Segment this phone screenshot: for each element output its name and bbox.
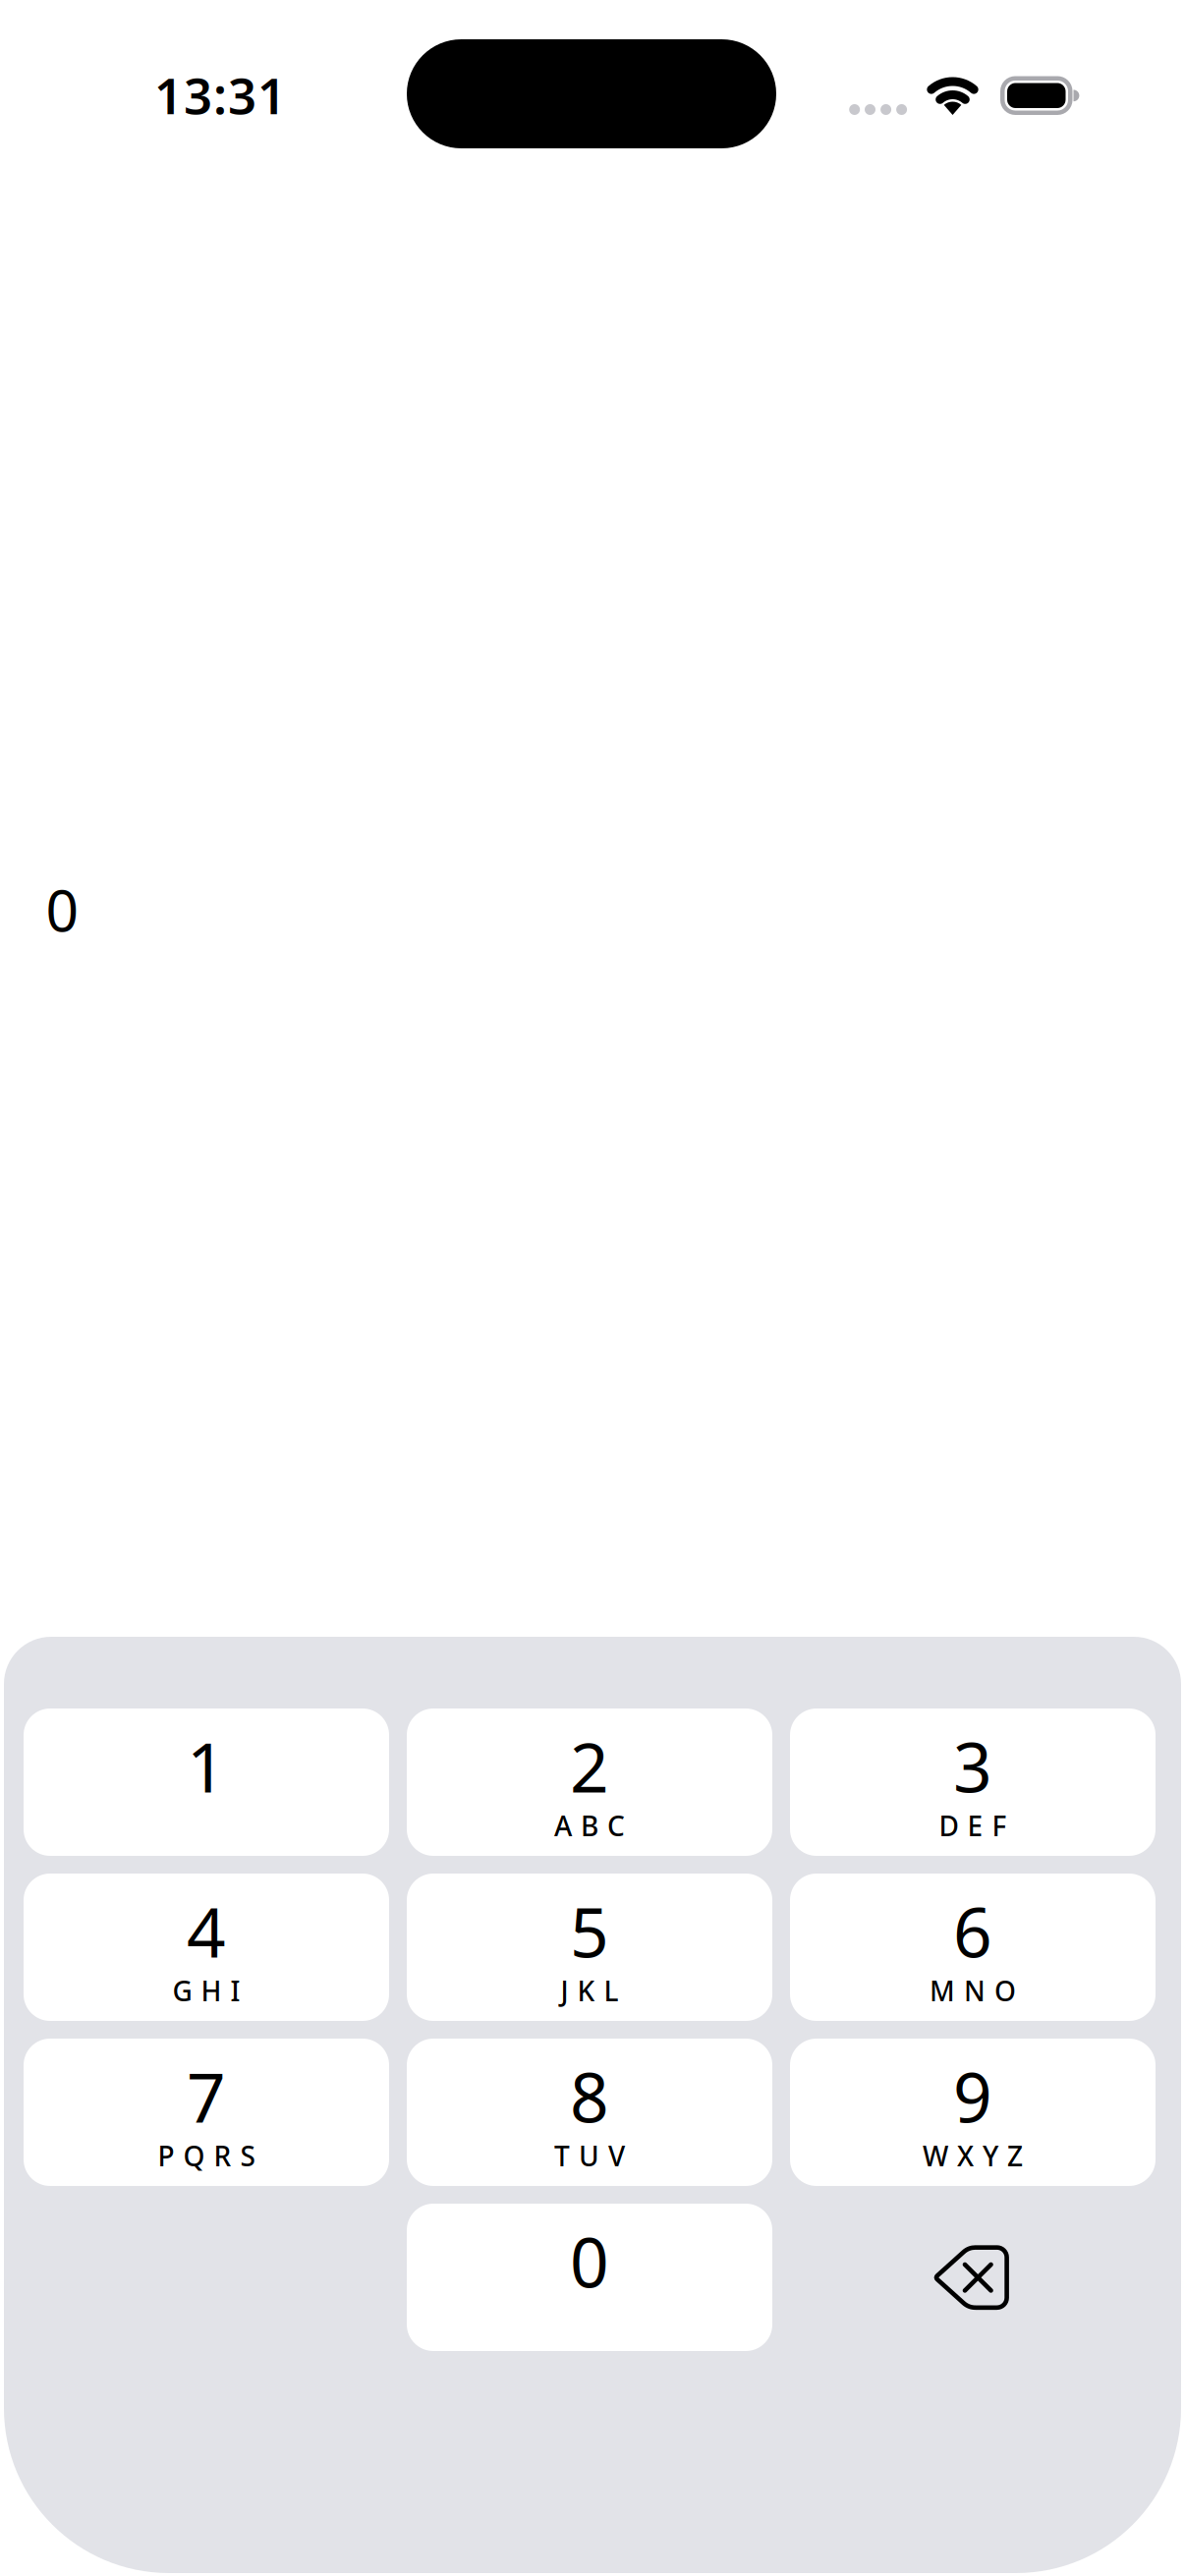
staticText: WXYZ	[923, 2137, 1023, 2174]
staticText: 7	[187, 2051, 226, 2141]
button[interactable]: 0	[407, 2204, 772, 2351]
button[interactable]: 7	[24, 2039, 389, 2186]
button[interactable]: 8	[407, 2039, 772, 2186]
staticText: 2	[570, 1721, 609, 1811]
staticText: 1	[187, 1721, 226, 1811]
staticText: 0	[570, 2216, 609, 2306]
button[interactable]: 5	[407, 1874, 772, 2021]
staticText: 0	[46, 871, 79, 947]
staticText: GHI	[172, 1972, 240, 2009]
button[interactable]: 6	[790, 1874, 1156, 2021]
staticText: JKL	[561, 1972, 619, 2009]
button[interactable]: 9	[790, 2039, 1156, 2186]
button[interactable]: Delete	[790, 2204, 1156, 2351]
staticText: DEF	[939, 1807, 1007, 1844]
staticText: 13:31	[154, 62, 286, 128]
button[interactable]: 2	[407, 1708, 772, 1856]
staticText: 9	[953, 2051, 992, 2141]
staticText: 6	[953, 1886, 992, 1976]
staticText: ABC	[554, 1807, 625, 1844]
staticText: PQRS	[158, 2137, 255, 2174]
staticText: 8	[570, 2051, 609, 2141]
button[interactable]: 1	[24, 1708, 389, 1856]
staticText: 5	[570, 1886, 609, 1976]
staticText: MNO	[930, 1972, 1016, 2009]
button[interactable]: 4	[24, 1874, 389, 2021]
staticText: 4	[187, 1886, 226, 1976]
button[interactable]: 3	[790, 1708, 1156, 1856]
staticText: TUV	[554, 2137, 625, 2174]
staticText: 3	[953, 1721, 992, 1811]
